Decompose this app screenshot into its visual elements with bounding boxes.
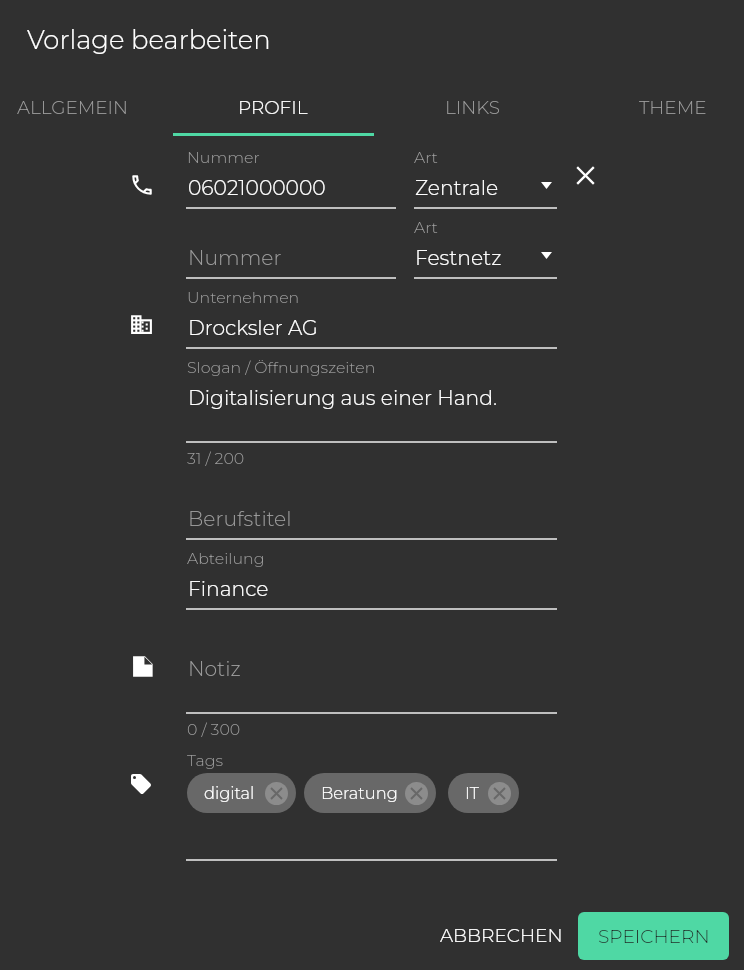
staticText: SPEICHERN	[598, 925, 710, 948]
staticText: digital	[204, 783, 255, 803]
staticText: Abteilung	[187, 549, 265, 568]
staticText: THEME	[639, 96, 707, 118]
button[interactable]: Beratung	[304, 773, 436, 813]
staticText: 0 / 300	[187, 720, 241, 739]
button[interactable]: ABBRECHEN	[424, 908, 578, 962]
staticText: Vorlage bearbeiten	[27, 24, 271, 56]
button[interactable]: SPEICHERN	[578, 912, 729, 960]
button[interactable]: PROFIL	[173, 83, 373, 131]
staticText: Nummer	[187, 148, 260, 167]
button[interactable]: Tag IT entfernen	[488, 782, 511, 805]
staticText: Beratung	[321, 783, 398, 803]
staticText: LINKS	[445, 96, 501, 118]
staticText: Tags	[187, 751, 223, 770]
button[interactable]: Eintrag entfernen	[565, 155, 605, 195]
button[interactable]: digital	[187, 773, 296, 813]
staticText: Nummer	[188, 245, 282, 270]
staticText: ALLGEMEIN	[17, 96, 129, 118]
staticText: Digitalisierung aus einer Hand.	[188, 385, 497, 410]
button[interactable]: ALLGEMEIN	[0, 83, 173, 131]
button[interactable]: LINKS	[373, 83, 573, 131]
staticText: Unternehmen	[187, 288, 300, 307]
button[interactable]: Tag Beratung entfernen	[405, 782, 428, 805]
staticText: ABBRECHEN	[440, 924, 563, 947]
staticText: Notiz	[188, 656, 241, 681]
button[interactable]: THEME	[573, 83, 744, 131]
button[interactable]: IT	[448, 773, 519, 813]
button[interactable]: Tag digital entfernen	[265, 782, 288, 805]
staticText: IT	[465, 783, 479, 803]
staticText: Art	[414, 148, 438, 167]
staticText: PROFIL	[238, 96, 308, 118]
staticText: Slogan / Öffnungszeiten	[187, 358, 376, 377]
staticText: Berufstitel	[188, 506, 292, 531]
staticText: Festnetz	[415, 245, 502, 270]
staticText: 06021000000	[188, 175, 326, 200]
staticText: Zentrale	[415, 175, 499, 200]
staticText: 31 / 200	[187, 449, 245, 468]
staticText: Art	[414, 218, 438, 237]
staticText: Finance	[188, 576, 269, 601]
staticText: Drocksler AG	[188, 315, 318, 340]
